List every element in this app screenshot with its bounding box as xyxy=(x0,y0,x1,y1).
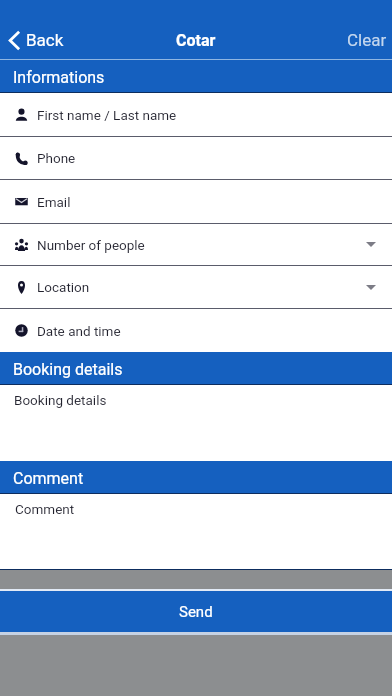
staticText: Email xyxy=(37,194,71,210)
staticText: Number of people xyxy=(37,237,145,253)
button[interactable]: Email xyxy=(0,180,392,224)
staticText: Location xyxy=(37,279,90,295)
staticText: Booking details xyxy=(14,392,107,408)
button[interactable]: Back xyxy=(0,30,72,50)
button[interactable]: Booking details xyxy=(0,385,392,461)
staticText: Comment xyxy=(13,469,84,488)
staticText: Back xyxy=(26,30,64,50)
button[interactable]: Comment xyxy=(0,494,392,569)
button[interactable]: Phone xyxy=(0,137,392,180)
staticText: Booking details xyxy=(13,360,123,379)
button[interactable]: Number of people xyxy=(0,224,392,266)
staticText: Cotar xyxy=(176,31,216,50)
button[interactable]: First name / Last name xyxy=(0,93,392,137)
staticText: First name / Last name xyxy=(37,107,177,123)
button[interactable]: Send xyxy=(0,591,392,632)
staticText: Comment xyxy=(15,501,75,517)
button[interactable]: Location xyxy=(0,266,392,309)
staticText: Clear xyxy=(347,30,387,50)
staticText: Phone xyxy=(37,150,76,166)
button[interactable]: Date and time xyxy=(0,309,392,352)
button[interactable]: Clear xyxy=(339,30,392,50)
staticText: Date and time xyxy=(37,323,121,339)
staticText: Informations xyxy=(13,68,105,87)
staticText: Send xyxy=(179,603,213,621)
